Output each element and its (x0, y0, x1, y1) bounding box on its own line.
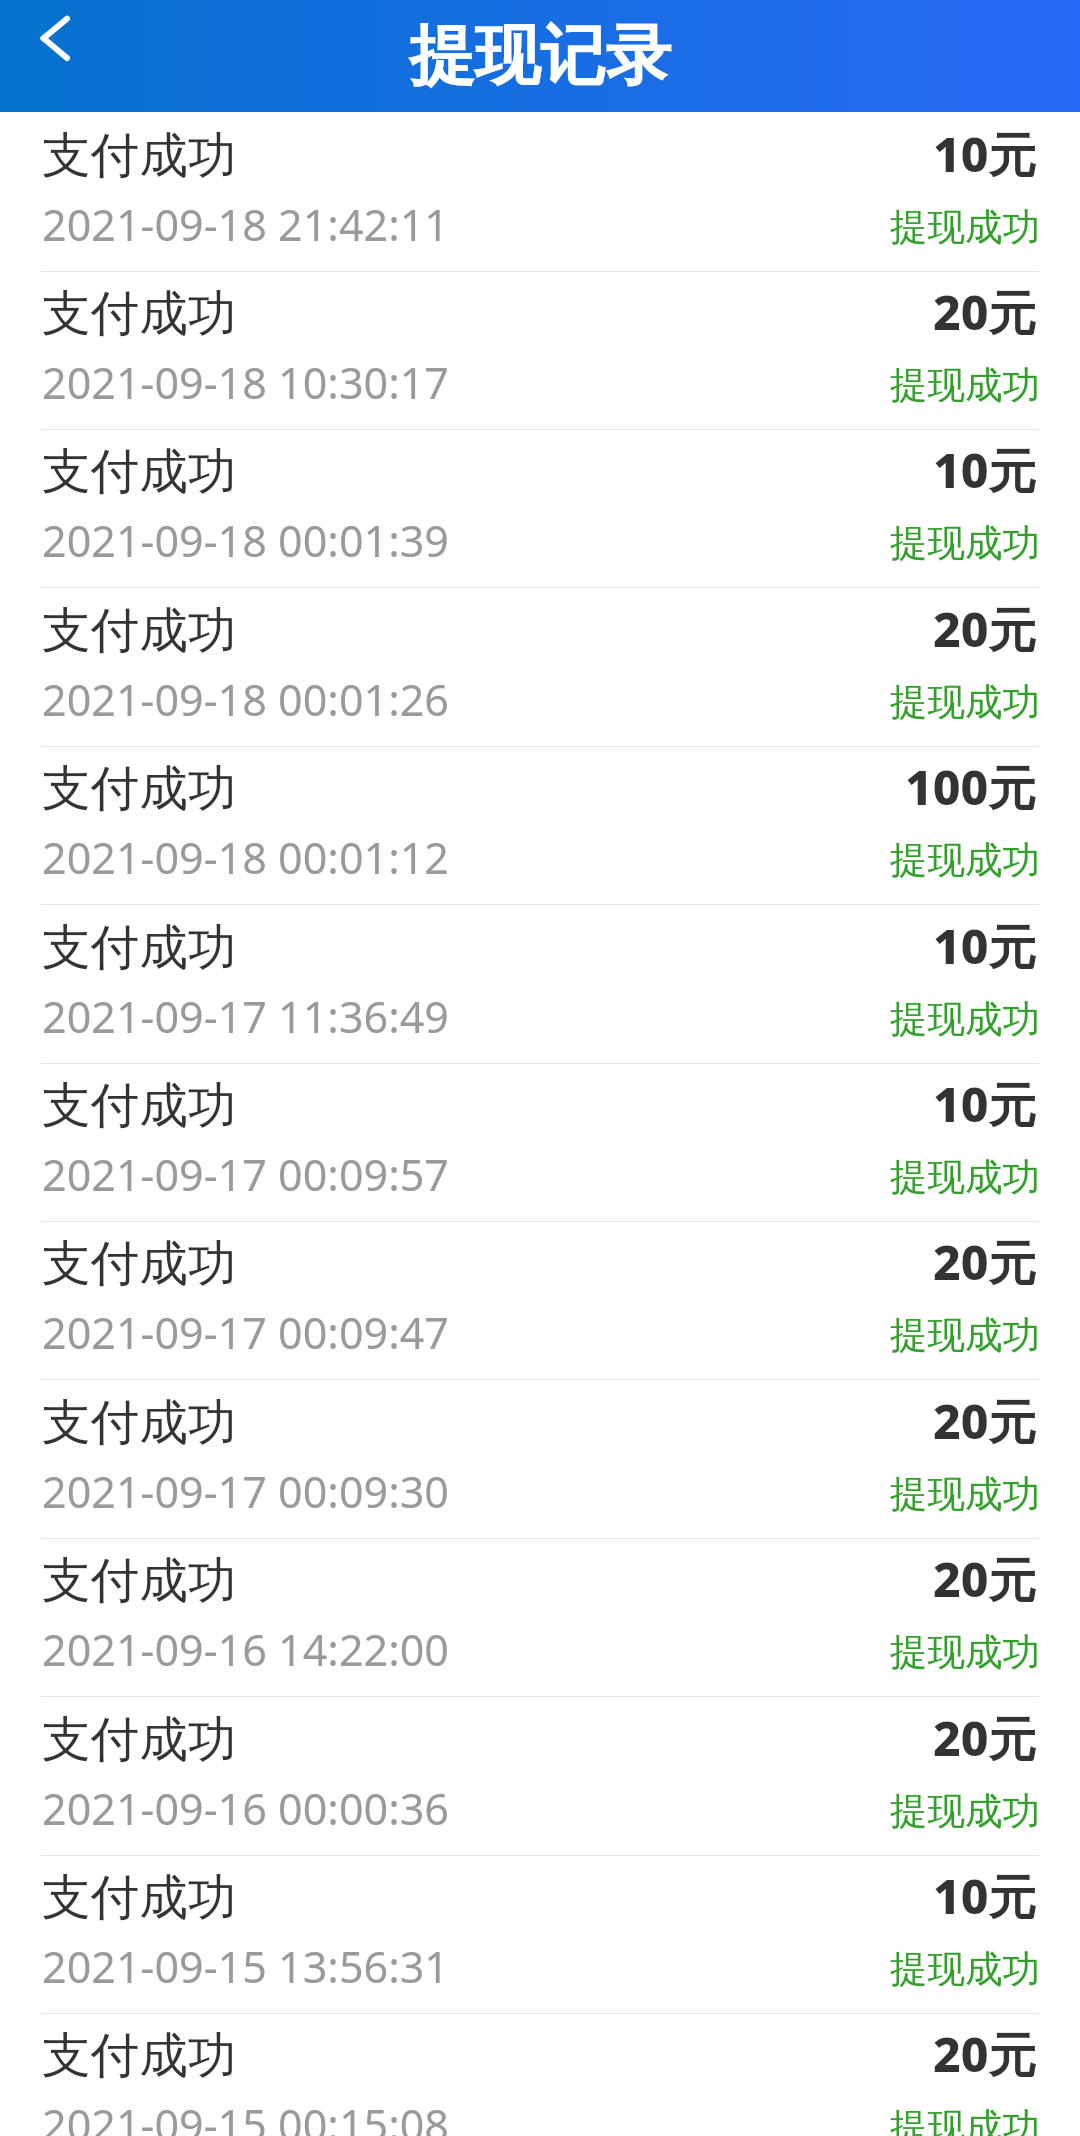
staticText: 提现成功 (890, 1154, 1040, 1201)
staticText: 提现成功 (890, 1471, 1040, 1518)
button[interactable]: 支付成功 (0, 1063, 1080, 1221)
staticText: 10元 (933, 913, 1037, 979)
staticText: 提现成功 (890, 204, 1040, 251)
staticText: 提现成功 (890, 1946, 1040, 1993)
staticText: 提现记录 (409, 15, 671, 97)
staticText: 2021-09-17 00:09:47 (42, 1303, 450, 1362)
staticText: 提现成功 (890, 1312, 1040, 1359)
staticText: 支付成功 (42, 1867, 237, 1928)
staticText: 2021-09-16 00:00:36 (42, 1779, 450, 1838)
staticText: 20元 (933, 1388, 1037, 1454)
button[interactable]: 支付成功 (0, 2013, 1080, 2136)
staticText: 2021-09-15 13:56:31 (42, 1937, 450, 1996)
staticText: 2021-09-18 10:30:17 (42, 353, 450, 412)
staticText: 2021-09-17 00:09:30 (42, 1462, 450, 1521)
staticText: 10元 (933, 121, 1037, 187)
staticText: 10元 (933, 1071, 1037, 1137)
staticText: 2021-09-17 00:09:57 (42, 1145, 450, 1204)
staticText: 2021-09-18 00:01:26 (42, 670, 450, 729)
staticText: 提现成功 (890, 837, 1040, 884)
staticText: 20元 (933, 279, 1037, 345)
button[interactable]: 支付成功 (0, 1221, 1080, 1379)
staticText: 2021-09-18 00:01:12 (42, 828, 450, 887)
staticText: 20元 (933, 2021, 1037, 2087)
staticText: 20元 (933, 1546, 1037, 1612)
staticText: 支付成功 (42, 125, 237, 186)
staticText: 2021-09-18 00:01:39 (42, 511, 450, 570)
staticText: 提现成功 (890, 2104, 1040, 2136)
staticText: 支付成功 (42, 1709, 237, 1770)
staticText: 提现成功 (890, 362, 1040, 409)
staticText: 2021-09-15 00:15:08 (42, 2095, 450, 2136)
staticText: 10元 (933, 1863, 1037, 1929)
button[interactable]: 支付成功 (0, 905, 1080, 1063)
staticText: 提现成功 (890, 1629, 1040, 1676)
staticText: 100元 (905, 754, 1037, 820)
staticText: 支付成功 (42, 441, 237, 502)
staticText: 2021-09-16 14:22:00 (42, 1620, 450, 1679)
button[interactable]: Back (0, 0, 112, 112)
button[interactable]: 支付成功 (0, 1538, 1080, 1696)
staticText: 支付成功 (42, 758, 237, 819)
staticText: 提现成功 (890, 1788, 1040, 1835)
button[interactable]: 支付成功 (0, 746, 1080, 904)
staticText: 20元 (933, 596, 1037, 662)
staticText: 支付成功 (42, 1075, 237, 1136)
staticText: 支付成功 (42, 1233, 237, 1294)
button[interactable]: 支付成功 (0, 429, 1080, 587)
staticText: 提现成功 (890, 996, 1040, 1043)
staticText: 2021-09-17 11:36:49 (42, 987, 450, 1046)
staticText: 2021-09-18 21:42:11 (42, 195, 450, 254)
button[interactable]: 支付成功 (0, 1855, 1080, 2013)
staticText: 提现成功 (890, 679, 1040, 726)
button[interactable]: 支付成功 (0, 588, 1080, 746)
button[interactable]: 支付成功 (0, 1697, 1080, 1855)
staticText: 10元 (933, 437, 1037, 503)
staticText: 提现成功 (890, 520, 1040, 567)
staticText: 20元 (933, 1229, 1037, 1295)
staticText: 20元 (933, 1705, 1037, 1771)
staticText: 支付成功 (42, 283, 237, 344)
button[interactable]: 支付成功 (0, 271, 1080, 429)
button[interactable]: 支付成功 (0, 113, 1080, 271)
button[interactable]: 支付成功 (0, 1380, 1080, 1538)
staticText: 支付成功 (42, 1550, 237, 1611)
staticText: 支付成功 (42, 2025, 237, 2086)
staticText: 支付成功 (42, 1392, 237, 1453)
staticText: 支付成功 (42, 600, 237, 661)
staticText: 支付成功 (42, 917, 237, 978)
